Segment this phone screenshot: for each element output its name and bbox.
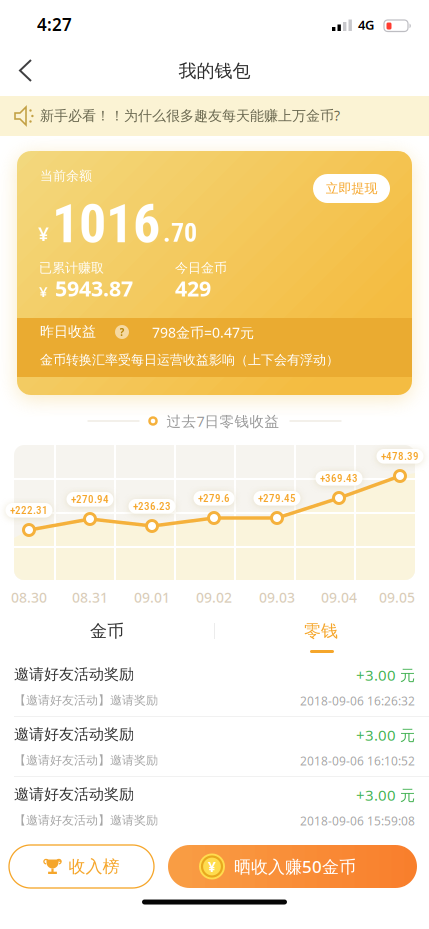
staticText: ¥ bbox=[208, 857, 216, 876]
staticText: 08.31 bbox=[72, 588, 108, 607]
staticText: 过去7日零钱收益 bbox=[166, 411, 279, 431]
staticText: 邀请好友活动奖励 bbox=[14, 725, 134, 743]
staticText: ¥ bbox=[38, 221, 49, 247]
staticText: +279.45 bbox=[258, 492, 296, 505]
staticText: 新手必看！！为什么很多趣友每天能赚上万金币? bbox=[40, 106, 340, 125]
button[interactable]: 零钱 bbox=[214, 616, 428, 646]
button[interactable]: 金币 bbox=[0, 616, 214, 646]
staticText: 09.05 bbox=[379, 588, 415, 607]
staticText: 429 bbox=[175, 274, 211, 302]
staticText: +3.00 元 bbox=[356, 665, 415, 685]
staticText: +3.00 元 bbox=[356, 785, 415, 805]
button[interactable]: Back bbox=[4, 51, 48, 89]
staticText: 晒收入赚50金币 bbox=[234, 855, 356, 878]
staticText: +270.94 bbox=[71, 493, 109, 506]
staticText: ¥ bbox=[39, 281, 48, 301]
staticText: 1016 bbox=[52, 193, 160, 255]
staticText: 【邀请好友活动】邀请奖励 bbox=[14, 813, 158, 828]
staticText: 零钱 bbox=[304, 621, 338, 641]
staticText: 邀请好友活动奖励 bbox=[14, 665, 134, 683]
staticText: 798金币=0.47元 bbox=[152, 323, 254, 342]
staticText: 09.01 bbox=[134, 588, 170, 607]
staticText: 已累计赚取 bbox=[39, 260, 104, 276]
staticText: 2018-09-06 16:26:32 bbox=[300, 693, 415, 709]
button[interactable]: 收益说明 bbox=[115, 325, 129, 339]
button[interactable]: ¥ bbox=[168, 845, 417, 888]
button[interactable]: 邀请好友活动奖励 bbox=[0, 717, 429, 777]
staticText: +3.00 元 bbox=[356, 725, 415, 745]
staticText: 4G bbox=[358, 16, 374, 33]
staticText: 金币 bbox=[90, 621, 124, 641]
staticText: 08.30 bbox=[11, 588, 47, 607]
staticText: .70 bbox=[163, 218, 197, 248]
staticText: 金币转换汇率受每日运营收益影响（上下会有浮动） bbox=[40, 352, 339, 368]
staticText: 昨日收益 bbox=[40, 323, 96, 340]
staticText: 09.03 bbox=[259, 588, 295, 607]
button[interactable]: 邀请好友活动奖励 bbox=[0, 657, 429, 717]
staticText: 当前余额 bbox=[40, 168, 92, 184]
staticText: +478.39 bbox=[381, 450, 419, 463]
button[interactable]: 立即提现 bbox=[313, 174, 390, 203]
staticText: 5943.87 bbox=[55, 274, 133, 302]
staticText: +369.43 bbox=[320, 472, 358, 485]
staticText: +222.31 bbox=[10, 504, 48, 517]
button[interactable]: 新手必看！！为什么很多趣友每天能赚上万金币? bbox=[0, 96, 429, 136]
staticText: 2018-09-06 15:59:08 bbox=[300, 813, 415, 829]
staticText: +279.6 bbox=[198, 492, 230, 505]
staticText: 09.02 bbox=[196, 588, 232, 607]
button[interactable]: 邀请好友活动奖励 bbox=[0, 777, 429, 837]
staticText: 今日金币 bbox=[175, 260, 227, 276]
staticText: ? bbox=[119, 325, 124, 339]
staticText: 邀请好友活动奖励 bbox=[14, 785, 134, 803]
staticText: 【邀请好友活动】邀请奖励 bbox=[14, 693, 158, 708]
button[interactable]: 收入榜 bbox=[9, 845, 154, 888]
staticText: 我的钱包 bbox=[178, 60, 250, 82]
staticText: 4:27 bbox=[37, 13, 72, 36]
staticText: 收入榜 bbox=[68, 856, 119, 877]
staticText: 09.04 bbox=[321, 588, 357, 607]
staticText: 【邀请好友活动】邀请奖励 bbox=[14, 753, 158, 768]
staticText: 2018-09-06 16:10:52 bbox=[300, 753, 415, 769]
staticText: 立即提现 bbox=[325, 180, 377, 196]
staticText: +236.23 bbox=[133, 500, 171, 513]
